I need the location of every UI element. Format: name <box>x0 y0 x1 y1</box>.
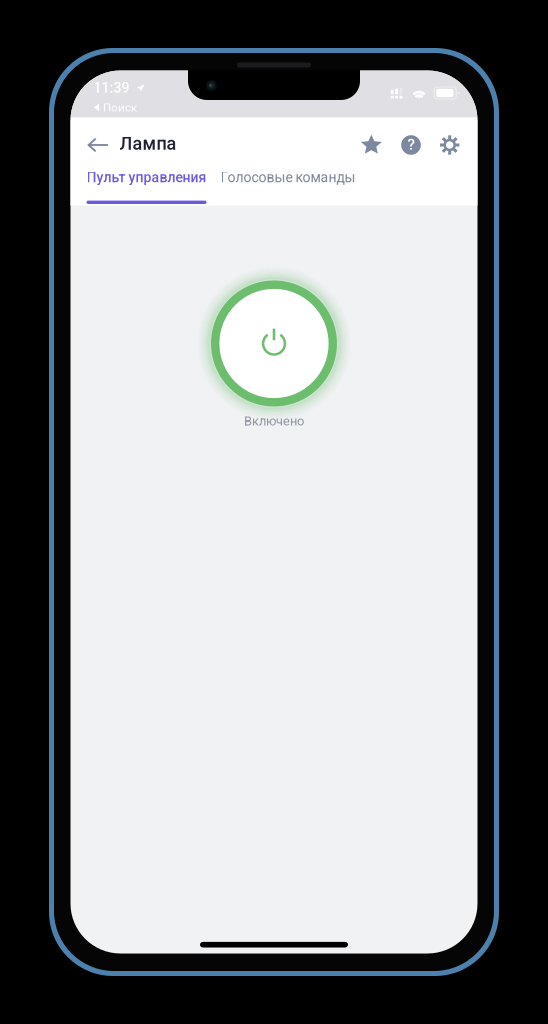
staticText: Включено <box>244 413 304 428</box>
staticText: Голосовые команды <box>220 169 355 186</box>
staticText: Лампа <box>119 133 176 154</box>
staticText: 11:39 <box>93 80 129 96</box>
button[interactable]: Favourite <box>351 117 391 172</box>
button[interactable]: Help <box>391 117 430 172</box>
button[interactable]: Голосовые команды <box>206 172 355 205</box>
button[interactable]: Settings <box>430 117 459 172</box>
button[interactable]: Back <box>87 117 124 172</box>
staticText: Поиск <box>103 101 137 114</box>
staticText: ? <box>407 136 414 154</box>
button[interactable]: Включено <box>194 263 354 438</box>
button[interactable]: Пульт управления <box>86 172 206 205</box>
staticText: Пульт управления <box>86 169 206 186</box>
